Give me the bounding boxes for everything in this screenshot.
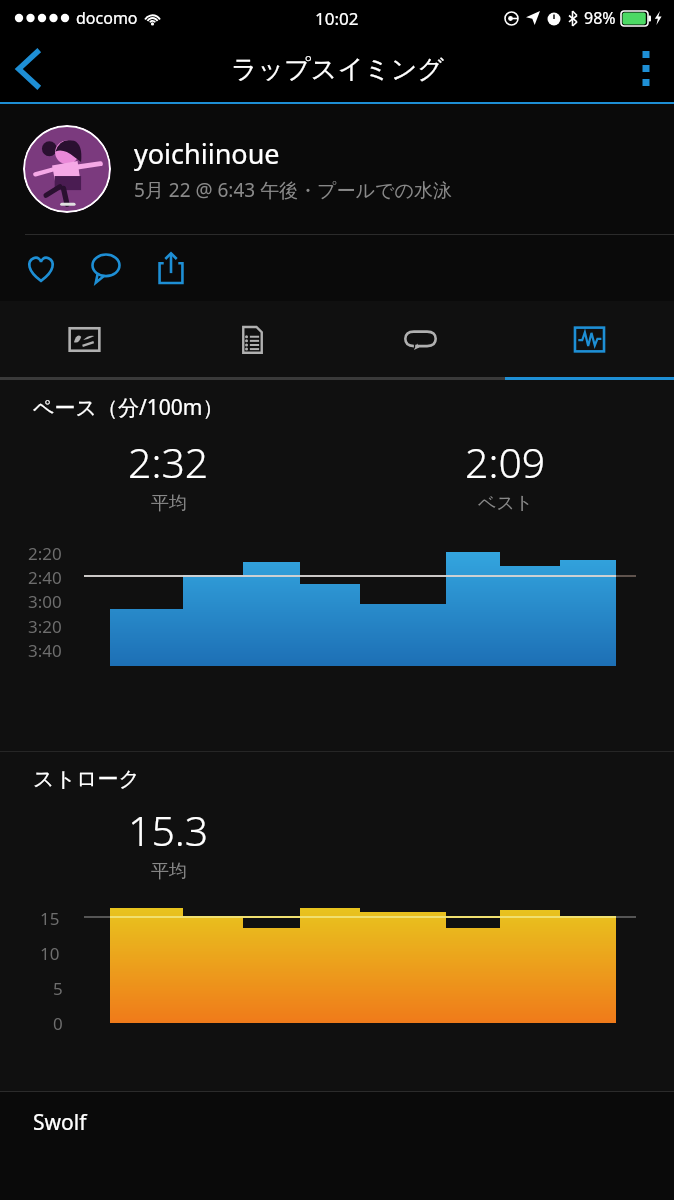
staticText: 10 [40, 942, 60, 965]
staticText: 98% [584, 7, 616, 29]
staticText: 15 [40, 907, 60, 930]
staticText: Swolf [33, 1108, 87, 1137]
staticText: 5月 22 @ 6:43 午後・プールでの水泳 [134, 177, 452, 203]
button[interactable]: Swolf [0, 1092, 674, 1152]
button[interactable]: More options [618, 41, 674, 97]
button[interactable]: yoichiinoue [0, 104, 674, 234]
button[interactable]: Charts [505, 301, 674, 377]
staticText: 2:40 [28, 566, 62, 589]
staticText: 15.3 [128, 802, 209, 858]
button[interactable]: Share [144, 241, 198, 295]
staticText: 5 [53, 977, 63, 1000]
button[interactable]: Like [14, 241, 68, 295]
staticText: 3:20 [28, 615, 62, 638]
button[interactable]: Details [168, 301, 336, 377]
staticText: ペース（分/100m） [33, 393, 224, 422]
staticText: ストローク [33, 766, 140, 792]
staticText: 2:20 [28, 542, 62, 565]
button[interactable]: Activity map [0, 301, 168, 377]
staticText: docomo [76, 7, 138, 29]
staticText: 平均 [151, 860, 187, 883]
staticText: ラップスイミング [231, 53, 444, 86]
button[interactable]: Laps [336, 301, 505, 377]
button[interactable]: Comment [79, 241, 133, 295]
staticText: ベスト [478, 492, 534, 515]
staticText: 3:40 [28, 639, 62, 662]
staticText: 0 [53, 1012, 63, 1035]
button[interactable]: Back [0, 41, 56, 97]
staticText: 平均 [151, 492, 187, 515]
staticText: 10:02 [315, 7, 359, 30]
staticText: 2:09 [465, 434, 546, 490]
staticText: 2:32 [128, 434, 209, 490]
staticText: 3:00 [28, 590, 62, 613]
staticText: yoichiinoue [134, 135, 280, 172]
